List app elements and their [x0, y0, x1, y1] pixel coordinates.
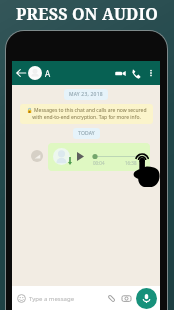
staticText: PRESS ON AUDIO	[0, 3, 174, 25]
button[interactable]: 00:04	[48, 143, 150, 171]
staticText: 🔒 Messages to this chat and calls are no…	[25, 107, 148, 121]
button[interactable]: Attach	[107, 294, 116, 303]
button[interactable]: Back	[15, 67, 27, 79]
staticText: 00:04	[93, 160, 105, 166]
button[interactable]: Video call	[115, 68, 126, 79]
button[interactable]: Call	[131, 68, 142, 79]
button[interactable]: Record voice message	[136, 288, 157, 309]
staticText: Type a message	[29, 295, 75, 303]
staticText: MAY 23, 2018	[69, 91, 103, 98]
staticText: A	[45, 68, 51, 79]
staticText: TODAY	[78, 130, 95, 137]
button[interactable]: More options	[146, 68, 156, 78]
button[interactable]: Type a message	[17, 294, 107, 303]
button[interactable]: Camera	[122, 294, 131, 303]
staticText: 16:38	[125, 160, 137, 166]
button[interactable]: 🔒 Messages to this chat and calls are no…	[20, 104, 153, 124]
